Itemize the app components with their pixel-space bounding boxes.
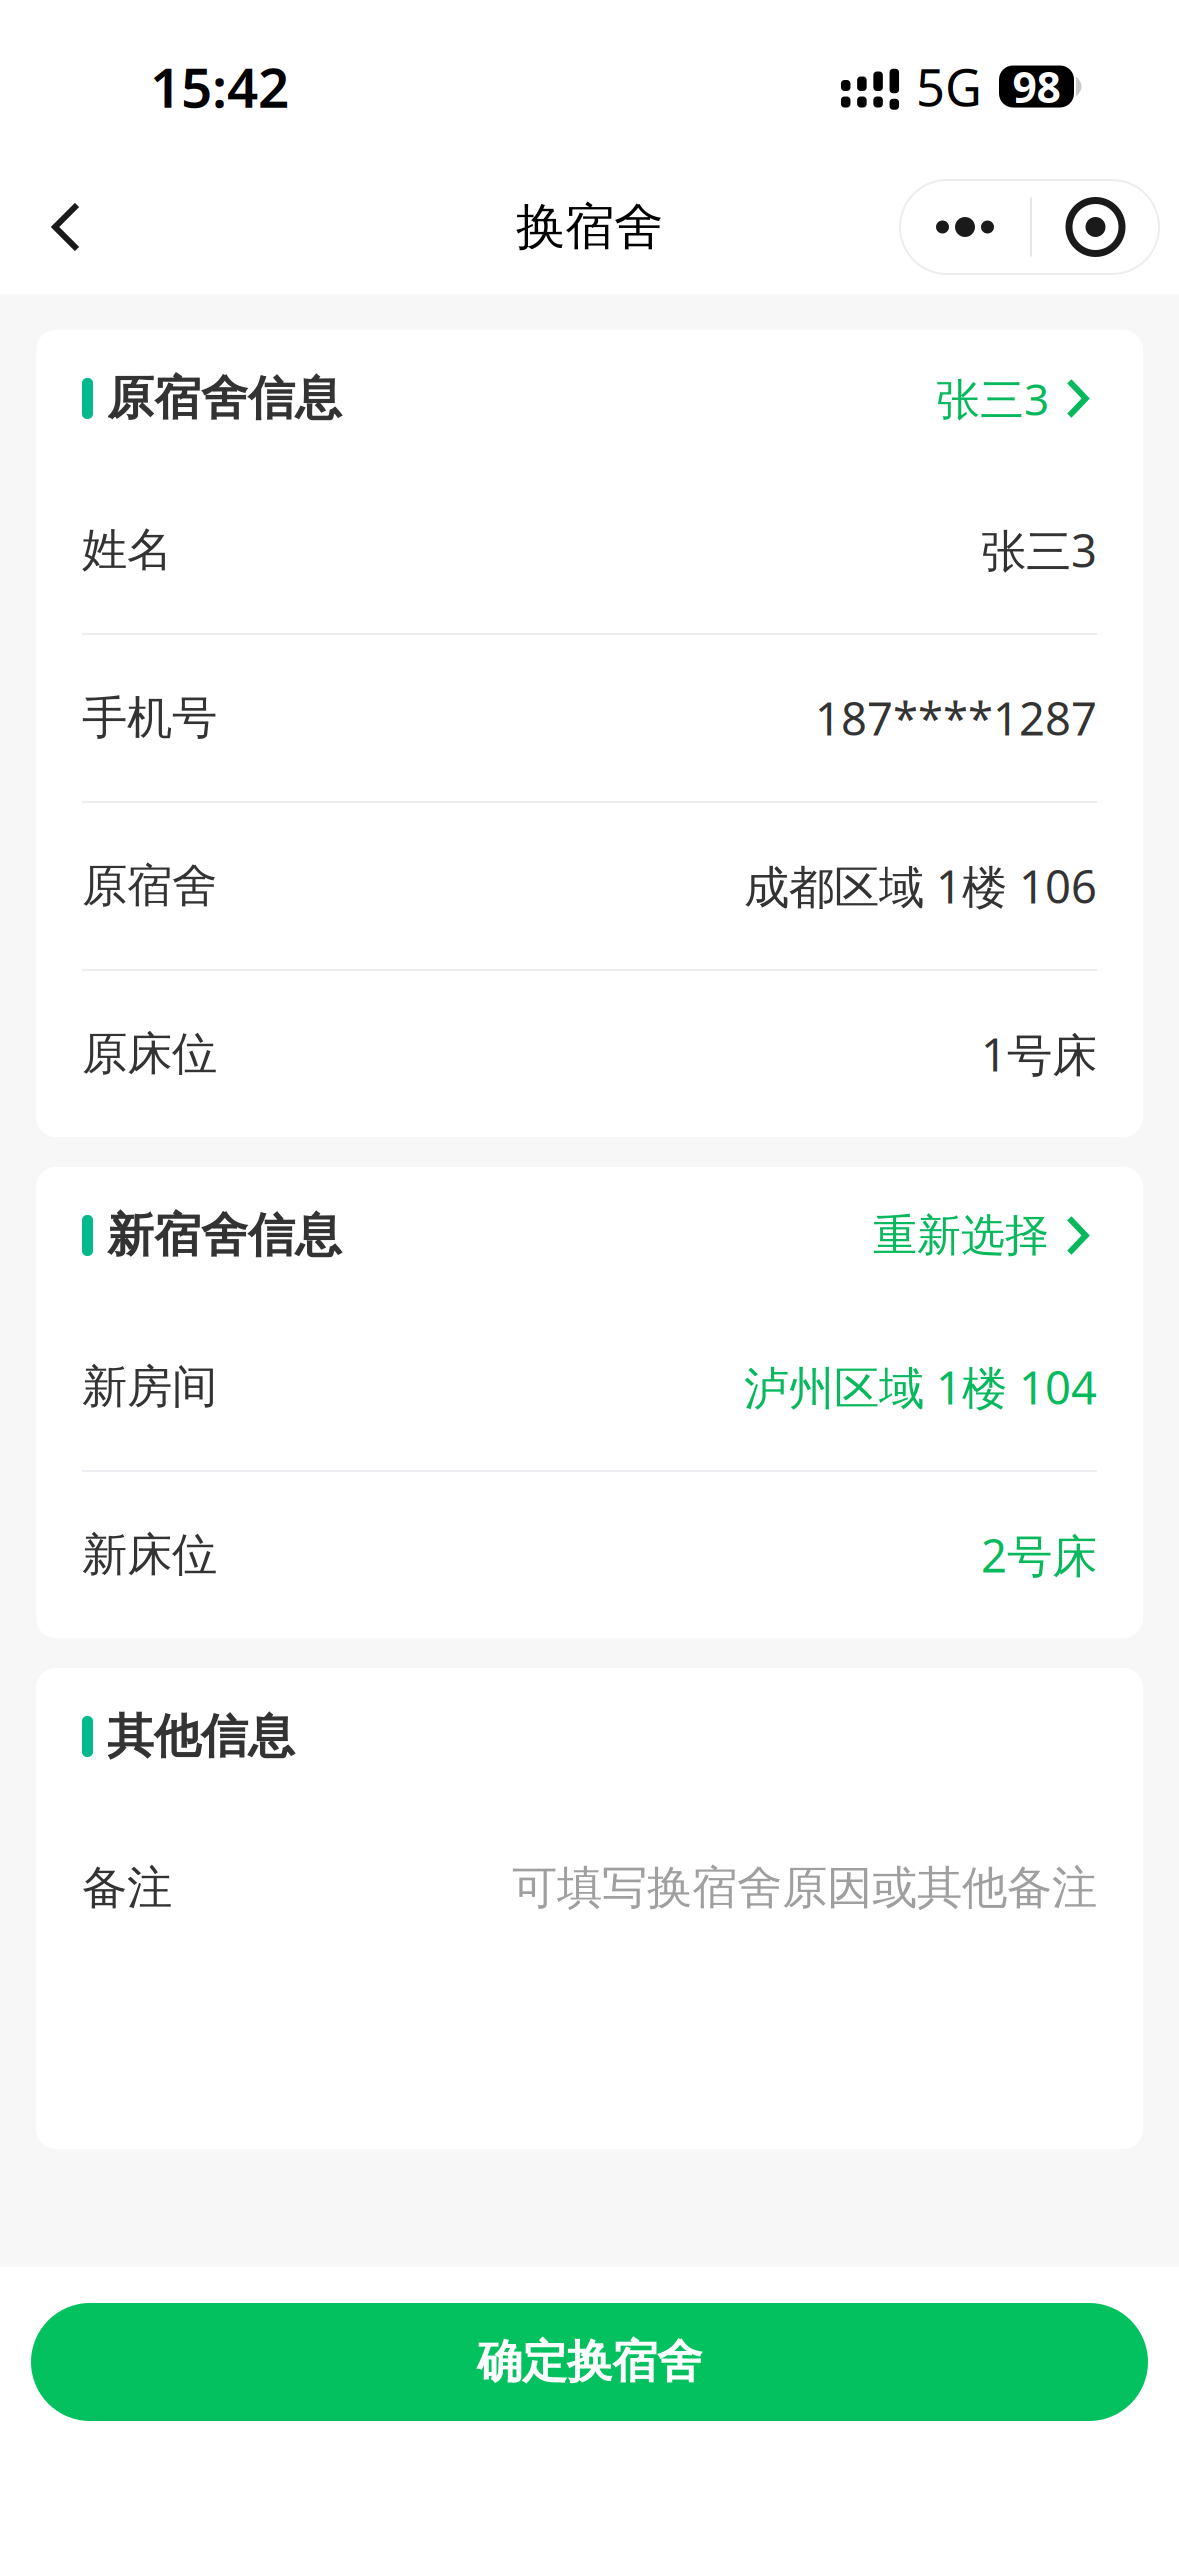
staticText: 手机号 <box>82 690 217 746</box>
button[interactable]: More options <box>900 180 1030 274</box>
staticText: 2号床 <box>981 1525 1097 1585</box>
staticText: 确定换宿舍 <box>477 2334 702 2390</box>
staticText: 新床位 <box>82 1527 217 1583</box>
staticText: 姓名 <box>82 522 172 578</box>
staticText: 新房间 <box>82 1359 217 1415</box>
staticText: 原宿舍 <box>82 858 217 914</box>
staticText: 98 <box>1012 58 1060 115</box>
staticText: 187****1287 <box>815 688 1097 748</box>
staticText: 泸州区域 1楼 104 <box>744 1357 1097 1417</box>
button[interactable]: Close mini program <box>1032 180 1159 274</box>
staticText: 重新选择 <box>873 1208 1049 1262</box>
button[interactable]: 张三3 <box>936 330 1097 467</box>
staticText: 5G <box>916 53 982 120</box>
button[interactable]: 确定换宿舍 <box>31 2303 1148 2421</box>
staticText: 原床位 <box>82 1026 217 1082</box>
button[interactable]: 备注 <box>82 1805 1097 2149</box>
staticText: 新宿舍信息 <box>107 1207 342 1264</box>
staticText: 其他信息 <box>107 1708 295 1765</box>
staticText: 成都区域 1楼 106 <box>744 856 1097 916</box>
staticText: 张三3 <box>936 369 1049 428</box>
staticText: 15:42 <box>150 50 289 123</box>
button[interactable]: Back <box>16 177 116 277</box>
staticText: 1号床 <box>981 1024 1097 1084</box>
staticText: 换宿舍 <box>516 197 663 257</box>
button[interactable]: 重新选择 <box>873 1167 1097 1304</box>
staticText: 张三3 <box>981 520 1097 580</box>
staticText: 原宿舍信息 <box>107 370 342 427</box>
staticText: 备注 <box>82 1860 172 1916</box>
staticText: 可填写换宿舍原因或其他备注 <box>512 1860 1097 1916</box>
